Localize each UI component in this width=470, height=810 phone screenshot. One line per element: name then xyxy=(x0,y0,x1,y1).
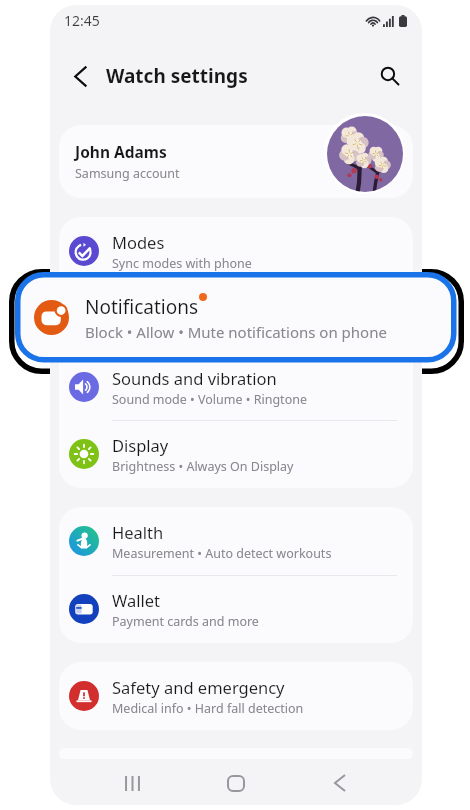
staticText: Wallet xyxy=(112,589,161,611)
button[interactable]: Profile picture xyxy=(324,113,405,194)
staticText: Sounds and vibration xyxy=(112,367,277,389)
button[interactable]: Back xyxy=(60,56,100,96)
button[interactable]: Sounds and vibration xyxy=(59,353,413,421)
button[interactable]: Modes xyxy=(59,217,413,285)
staticText: Measurement • Auto detect workouts xyxy=(112,545,332,562)
staticText: Payment cards and more xyxy=(112,613,259,630)
staticText: John Adams xyxy=(75,141,167,162)
button[interactable]: Notifications xyxy=(59,285,413,353)
staticText: Medical info • Hard fall detection xyxy=(112,700,304,717)
staticText: Sync modes with phone xyxy=(112,255,252,272)
button[interactable]: Notifications xyxy=(18,275,456,360)
staticText: Notifications xyxy=(112,299,211,321)
staticText: Display xyxy=(112,434,169,456)
staticText: Samsung account xyxy=(75,165,180,182)
staticText: Sound mode • Volume • Ringtone xyxy=(112,391,307,408)
button[interactable]: Recent apps xyxy=(111,762,153,804)
staticText: Block • Allow • Mute notifications on ph… xyxy=(112,323,364,340)
button[interactable]: Search xyxy=(370,56,410,96)
button[interactable]: Back xyxy=(319,762,361,804)
button[interactable]: Health xyxy=(59,507,413,575)
button[interactable]: Wallet xyxy=(59,575,413,643)
staticText: Brightness • Always On Display xyxy=(112,458,294,475)
staticText: Health xyxy=(112,521,164,543)
button[interactable]: Home xyxy=(215,762,257,804)
button[interactable]: John Adams xyxy=(59,125,413,198)
button[interactable]: Safety and emergency xyxy=(59,662,413,730)
staticText: Block • Allow • Mute notifications on ph… xyxy=(85,322,387,342)
staticText: Modes xyxy=(112,231,165,253)
staticText: 12:45 xyxy=(64,11,100,30)
staticText: Notifications xyxy=(85,294,199,320)
staticText: Safety and emergency xyxy=(112,676,285,698)
button[interactable]: Display xyxy=(59,420,413,488)
staticText: Watch settings xyxy=(106,63,248,89)
